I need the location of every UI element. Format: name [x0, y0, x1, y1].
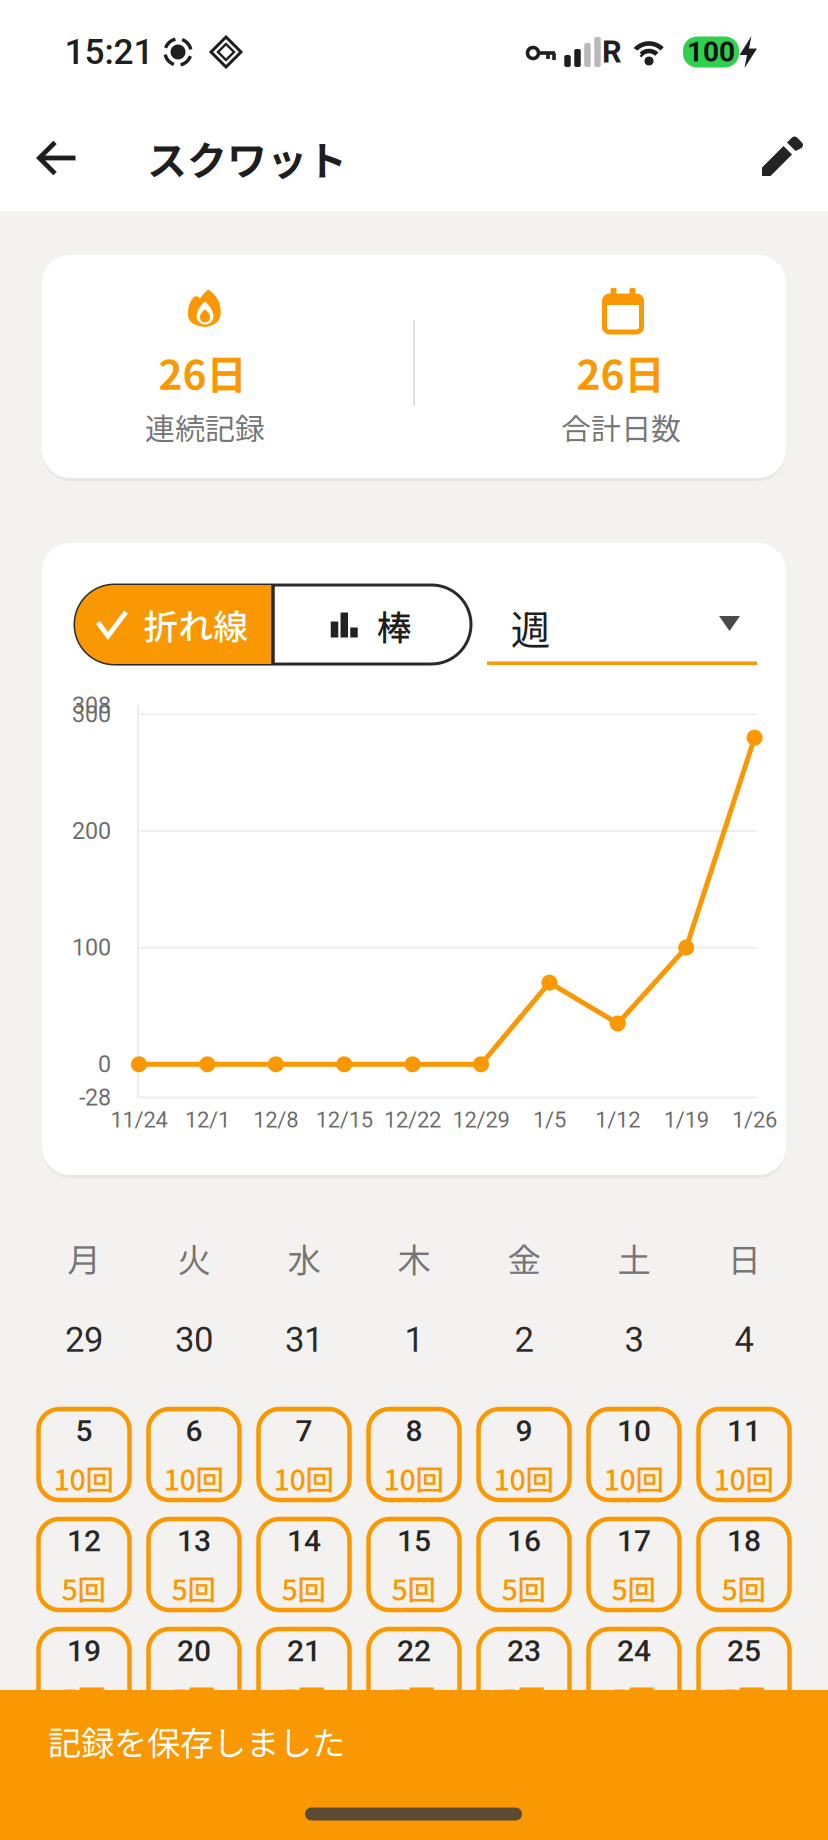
- staticText: 5回: [721, 1567, 766, 1609]
- staticText: 24: [617, 1633, 651, 1669]
- staticText: 11: [727, 1413, 761, 1449]
- staticText: 土: [617, 1234, 650, 1282]
- staticText: 5回: [171, 1567, 216, 1609]
- staticText: 折れ線: [143, 599, 248, 650]
- button[interactable]: 23: [478, 1629, 569, 1720]
- staticText: 12/15: [316, 1107, 373, 1133]
- staticText: 0: [98, 1051, 111, 1078]
- staticText: 18: [727, 1523, 761, 1559]
- button[interactable]: 5: [38, 1409, 129, 1500]
- staticText: 9: [515, 1413, 532, 1449]
- staticText: 26日: [158, 343, 247, 401]
- button[interactable]: 8: [368, 1409, 459, 1500]
- staticText: 12/1: [185, 1107, 230, 1133]
- staticText: 8: [405, 1413, 422, 1449]
- staticText: 火: [177, 1234, 210, 1282]
- staticText: 金: [507, 1234, 540, 1282]
- staticText: 5回: [391, 1677, 436, 1719]
- button[interactable]: 12: [38, 1519, 129, 1610]
- button[interactable]: 13: [148, 1519, 239, 1610]
- staticText: スクワット: [147, 129, 347, 187]
- staticText: 19: [67, 1633, 101, 1669]
- staticText: 月: [67, 1234, 100, 1282]
- button[interactable]: 10: [588, 1409, 679, 1500]
- staticText: 308: [72, 692, 111, 719]
- button[interactable]: 22: [368, 1629, 459, 1720]
- staticText: 15:21: [64, 31, 153, 73]
- staticText: 棒: [377, 600, 412, 651]
- staticText: 200: [72, 817, 111, 845]
- button[interactable]: 24: [588, 1629, 679, 1720]
- button[interactable]: 19: [38, 1629, 129, 1720]
- button[interactable]: 7: [258, 1409, 349, 1500]
- staticText: 5回: [281, 1567, 326, 1609]
- staticText: 300: [72, 701, 111, 728]
- staticText: 10: [617, 1413, 651, 1449]
- staticText: 21: [287, 1633, 321, 1669]
- staticText: 1/19: [664, 1107, 709, 1133]
- staticText: 合計日数: [561, 405, 681, 449]
- staticText: 100: [687, 36, 735, 68]
- button[interactable]: 25: [698, 1629, 789, 1720]
- staticText: 1: [404, 1320, 423, 1360]
- staticText: 11/24: [110, 1107, 167, 1133]
- staticText: 12/8: [253, 1107, 298, 1133]
- button[interactable]: 16: [478, 1519, 569, 1610]
- staticText: 5回: [611, 1567, 656, 1609]
- staticText: 10回: [493, 1457, 554, 1499]
- button[interactable]: 11: [698, 1409, 789, 1500]
- staticText: 5回: [171, 1677, 216, 1719]
- staticText: 31: [285, 1320, 323, 1360]
- staticText: 23: [507, 1633, 541, 1669]
- staticText: 12/22: [384, 1107, 441, 1133]
- staticText: 30: [175, 1320, 213, 1360]
- staticText: 5回: [281, 1677, 326, 1719]
- staticText: 16: [507, 1523, 541, 1559]
- staticText: 10回: [383, 1457, 444, 1499]
- staticText: 3: [624, 1320, 643, 1360]
- staticText: 12/29: [452, 1107, 509, 1133]
- button[interactable]: 20: [148, 1629, 239, 1720]
- button[interactable]: 9: [478, 1409, 569, 1500]
- staticText: 5回: [61, 1567, 106, 1609]
- staticText: 記録を保存しました: [48, 1717, 345, 1765]
- button[interactable]: 棒: [272, 585, 471, 664]
- staticText: 25: [727, 1633, 761, 1669]
- staticText: 連続記録: [145, 405, 265, 449]
- staticText: 日: [727, 1234, 760, 1282]
- staticText: 木: [397, 1234, 430, 1282]
- staticText: 10回: [603, 1457, 664, 1499]
- button[interactable]: 折れ線: [75, 585, 272, 664]
- button[interactable]: 18: [698, 1519, 789, 1610]
- staticText: 26日: [576, 343, 665, 401]
- button[interactable]: Edit: [751, 129, 807, 185]
- button[interactable]: 週: [487, 585, 757, 665]
- button[interactable]: 21: [258, 1629, 349, 1720]
- staticText: 14: [287, 1523, 321, 1559]
- staticText: 12: [67, 1523, 101, 1559]
- staticText: 10回: [713, 1457, 774, 1499]
- staticText: 15: [397, 1523, 431, 1559]
- button[interactable]: Back: [37, 139, 77, 177]
- staticText: 2: [514, 1320, 533, 1360]
- staticText: 10回: [163, 1457, 224, 1499]
- staticText: 1/12: [595, 1107, 640, 1133]
- staticText: 5回: [721, 1677, 766, 1719]
- staticText: 5回: [501, 1567, 546, 1609]
- staticText: 20: [177, 1633, 211, 1669]
- staticText: R: [602, 34, 622, 70]
- button[interactable]: 6: [148, 1409, 239, 1500]
- staticText: 6: [185, 1413, 202, 1449]
- staticText: 100: [72, 934, 111, 961]
- staticText: 17: [617, 1523, 651, 1559]
- staticText: 10回: [53, 1457, 114, 1499]
- staticText: 5回: [61, 1677, 106, 1719]
- staticText: 29: [65, 1320, 103, 1360]
- button[interactable]: 14: [258, 1519, 349, 1610]
- staticText: 13: [177, 1523, 211, 1559]
- staticText: 4: [734, 1320, 753, 1360]
- button[interactable]: 15: [368, 1519, 459, 1610]
- staticText: 22: [397, 1633, 431, 1669]
- staticText: 10回: [273, 1457, 334, 1499]
- button[interactable]: 17: [588, 1519, 679, 1610]
